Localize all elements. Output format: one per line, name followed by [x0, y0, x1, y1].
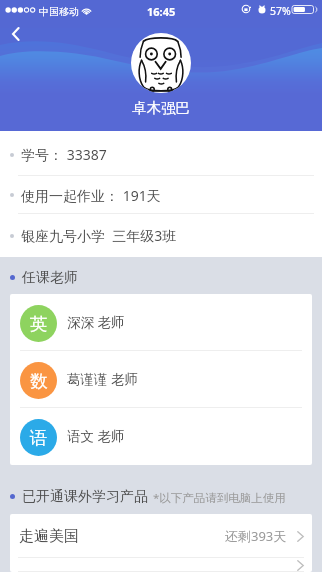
staticText: 使用一起作业： 191天: [21, 186, 161, 205]
staticText: 已开通课外学习产品: [22, 488, 148, 506]
button[interactable]: 英: [10, 294, 312, 351]
staticText: 语文 老师: [67, 427, 125, 445]
button[interactable]: Back: [3, 21, 29, 47]
button[interactable]: [10, 558, 312, 572]
staticText: 中国移动: [39, 5, 79, 18]
staticText: 深深 老师: [67, 313, 125, 331]
staticText: 学号： 33387: [21, 145, 107, 164]
staticText: 还剩393天: [225, 527, 287, 545]
staticText: 16:45: [147, 4, 176, 19]
staticText: 任课老师: [22, 269, 78, 287]
staticText: 英: [30, 313, 48, 335]
button[interactable]: 学号： 33387: [0, 131, 322, 176]
button[interactable]: 银座九号小学 三年级3班: [0, 214, 322, 257]
button[interactable]: 使用一起作业： 191天: [0, 176, 322, 214]
staticText: *以下产品请到电脑上使用: [153, 490, 286, 506]
staticText: 葛谨谨 老师: [67, 370, 139, 388]
staticText: 走遍美国: [19, 527, 79, 546]
staticText: 57%: [270, 4, 291, 18]
staticText: 数: [30, 370, 48, 392]
staticText: 卓木强巴: [132, 99, 190, 117]
button[interactable]: 数: [10, 351, 312, 408]
button[interactable]: 语: [10, 408, 312, 465]
staticText: 银座九号小学 三年级3班: [21, 226, 177, 245]
button[interactable]: 走遍美国: [10, 514, 312, 558]
staticText: 语: [30, 427, 48, 449]
